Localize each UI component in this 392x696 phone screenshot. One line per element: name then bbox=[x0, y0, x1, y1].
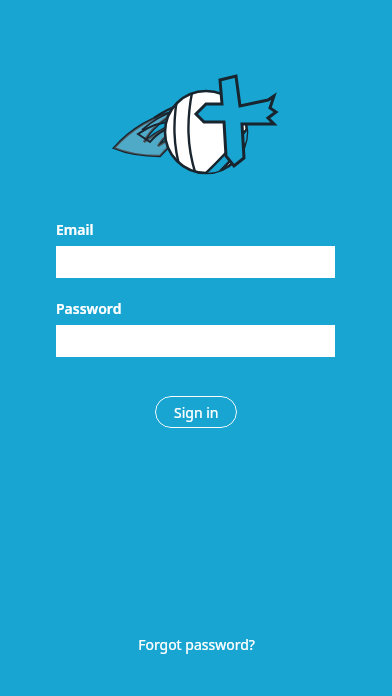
staticText: Forgot password? bbox=[138, 635, 255, 654]
button[interactable]: Sign in bbox=[155, 396, 237, 428]
staticText: Email bbox=[56, 220, 94, 239]
staticText: Password bbox=[56, 299, 122, 318]
staticText: Sign in bbox=[174, 403, 219, 422]
button[interactable]: Forgot password? bbox=[138, 635, 255, 654]
other: App logo bbox=[108, 72, 288, 178]
